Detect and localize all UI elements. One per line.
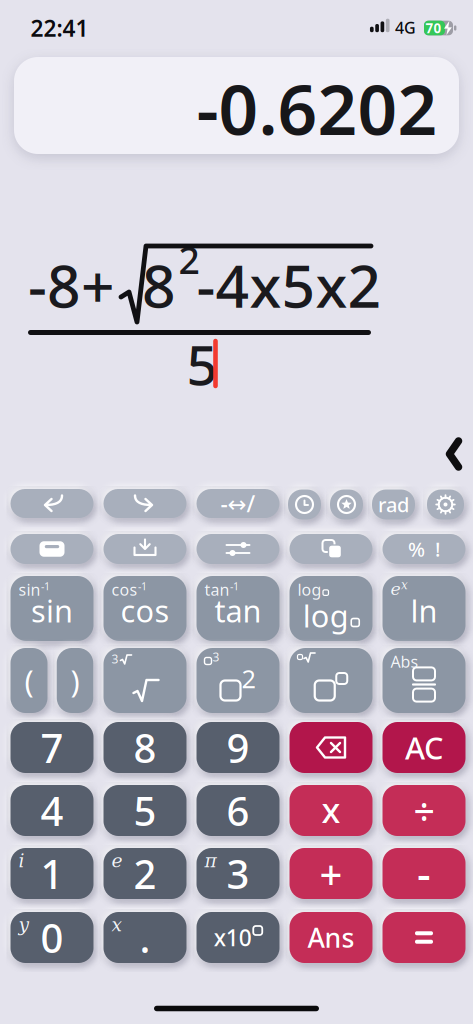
button[interactable]: ln	[382, 576, 465, 641]
button[interactable]: 0	[10, 912, 93, 963]
button[interactable]: Undo	[10, 489, 93, 518]
button[interactable]: 5	[103, 785, 186, 836]
button[interactable]: Ans	[289, 912, 372, 963]
button[interactable]: Subtract	[382, 848, 465, 899]
button[interactable]: )	[57, 648, 93, 713]
button[interactable]: .	[103, 912, 186, 963]
button[interactable]: %	[382, 534, 465, 564]
staticText: rad	[378, 491, 409, 518]
staticText: x10	[214, 922, 252, 952]
button[interactable]: sin	[10, 576, 93, 641]
button[interactable]: 1	[10, 848, 93, 899]
button[interactable]: Saved expressions	[10, 534, 93, 564]
staticText: )	[70, 660, 79, 701]
staticText: 22:41	[30, 13, 88, 43]
staticText: log	[303, 595, 349, 636]
staticText: sin	[18, 579, 40, 600]
staticText: 5	[133, 784, 156, 837]
button[interactable]: 9	[196, 722, 279, 773]
staticText: e	[390, 579, 400, 599]
staticText: -	[417, 845, 431, 902]
button[interactable]: (	[10, 648, 47, 713]
button[interactable]: Favorites	[330, 489, 363, 519]
staticText: 9	[226, 721, 249, 774]
staticText: -1	[41, 579, 50, 593]
staticText: x	[111, 914, 122, 936]
staticText: 8	[133, 721, 156, 774]
staticText: -4x5x2	[196, 246, 381, 324]
staticText: ln	[410, 590, 437, 631]
button[interactable]: 7	[10, 722, 93, 773]
staticText: 70	[425, 19, 441, 37]
staticText: 7	[40, 721, 63, 774]
staticText: 5	[186, 328, 217, 400]
staticText: 2	[241, 662, 255, 695]
staticText: %	[408, 536, 425, 562]
staticText: cos	[111, 579, 137, 600]
staticText: log	[297, 579, 321, 600]
staticText: 6	[226, 784, 249, 837]
button[interactable]: cos	[103, 576, 186, 641]
staticText: !	[435, 536, 440, 562]
button[interactable]: 8	[103, 722, 186, 773]
button[interactable]: Options	[196, 534, 279, 564]
staticText: i	[18, 850, 24, 872]
button[interactable]: Fraction	[382, 648, 465, 713]
staticText: 4	[40, 784, 63, 837]
staticText: 2	[178, 235, 199, 284]
staticText: π	[204, 850, 216, 872]
staticText: 4G	[395, 17, 416, 38]
staticText: 8	[142, 246, 176, 324]
button[interactable]: Cube root	[103, 648, 186, 713]
staticText: e	[111, 850, 122, 872]
staticText: .	[139, 911, 150, 964]
staticText: tan	[214, 590, 261, 631]
button[interactable]: rad	[372, 489, 415, 519]
button[interactable]: 3	[196, 848, 279, 899]
button[interactable]: Multiply	[289, 785, 372, 836]
staticText: 3	[111, 651, 118, 667]
button[interactable]: 6	[196, 785, 279, 836]
button[interactable]: log	[289, 576, 372, 641]
staticText: 3	[212, 649, 219, 665]
staticText: (	[24, 660, 33, 701]
button[interactable]: Divide	[382, 785, 465, 836]
button[interactable]: Hide keyboard	[446, 437, 462, 470]
staticText: +	[319, 847, 342, 900]
button[interactable]: Power	[289, 648, 372, 713]
staticText: AC	[405, 727, 443, 768]
button[interactable]: Redo	[103, 489, 186, 518]
button[interactable]: Settings	[427, 489, 464, 519]
staticText: tan	[204, 579, 229, 600]
button[interactable]: History	[288, 489, 321, 519]
staticText: 2	[133, 847, 156, 900]
button[interactable]: Save	[103, 534, 186, 564]
staticText: sin	[31, 590, 73, 631]
staticText: Ans	[307, 920, 354, 955]
button[interactable]: Equals	[382, 912, 465, 963]
staticText: -0.6202	[196, 62, 437, 154]
button[interactable]: AC	[382, 722, 465, 773]
staticText: 3	[226, 847, 249, 900]
staticText: 0	[40, 911, 63, 964]
staticText: -1	[230, 579, 239, 593]
staticText: x	[321, 786, 340, 832]
button[interactable]: Add	[289, 848, 372, 899]
staticText: Abs	[390, 651, 418, 672]
staticText: 1	[40, 847, 63, 900]
button[interactable]: -↔/	[196, 489, 279, 518]
button[interactable]: Times ten to the power	[196, 912, 279, 963]
staticText: x	[401, 578, 408, 592]
staticText: -1	[138, 579, 147, 593]
button[interactable]: Copy	[289, 534, 372, 564]
staticText: -8+	[28, 246, 115, 324]
staticText: -↔/	[220, 488, 255, 518]
staticText: y	[18, 914, 29, 936]
button[interactable]: 4	[10, 785, 93, 836]
button[interactable]: tan	[196, 576, 279, 641]
staticText: cos	[120, 590, 169, 631]
button[interactable]: Delete	[289, 722, 372, 773]
button[interactable]: 2	[103, 848, 186, 899]
staticText: ÷	[413, 786, 434, 835]
button[interactable]: Square	[196, 648, 279, 713]
